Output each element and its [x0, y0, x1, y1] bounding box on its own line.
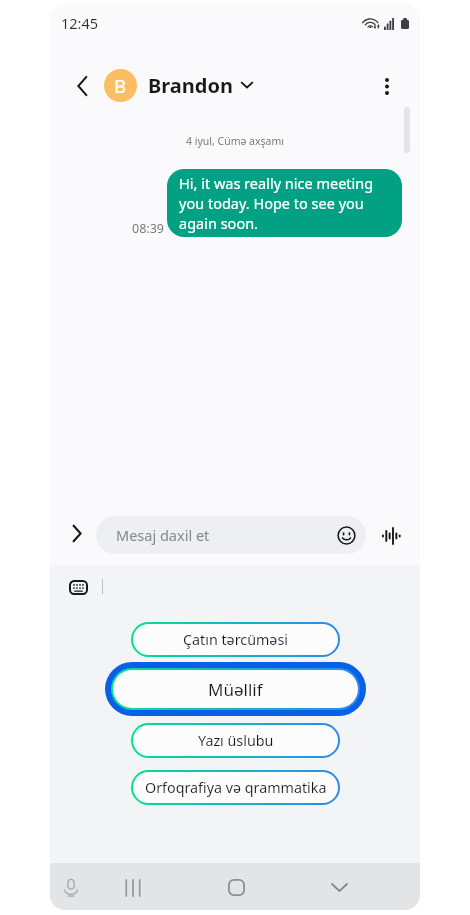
button[interactable]: Keyboard [62, 571, 94, 603]
button[interactable]: Çatın tərcüməsi [133, 624, 338, 655]
button[interactable]: Recents [115, 870, 151, 906]
button[interactable]: B [104, 66, 253, 104]
button[interactable]: Voice input [53, 870, 89, 906]
staticText: Çatın tərcüməsi [183, 630, 288, 649]
button[interactable]: Home [218, 869, 254, 905]
staticText: 12:45 [61, 13, 99, 33]
button[interactable]: Voice message [375, 520, 407, 552]
staticText: Mesaj daxil et [116, 525, 210, 545]
button[interactable]: Mesaj daxil et [96, 516, 366, 554]
button[interactable]: Show more options [61, 517, 93, 549]
staticText: Brandon [148, 72, 233, 99]
button[interactable]: Orfoqrafiya və qrammatika [133, 772, 338, 803]
staticText: B [114, 73, 127, 98]
button[interactable]: Müəllif [113, 670, 358, 708]
button[interactable]: Hide keyboard [321, 869, 357, 905]
staticText: Yazı üslubu [198, 731, 274, 750]
staticText: 4 iyul, Cümə axşamı [50, 134, 420, 148]
button[interactable]: Back [64, 68, 100, 104]
staticText: Orfoqrafiya və qrammatika [145, 778, 327, 797]
staticText: Hi, it was really nice meeting you today… [179, 173, 391, 233]
staticText: Müəllif [208, 678, 263, 701]
button[interactable]: Yazı üslubu [133, 725, 338, 756]
button[interactable]: More options [368, 67, 406, 105]
staticText: 08:39 [132, 220, 164, 237]
